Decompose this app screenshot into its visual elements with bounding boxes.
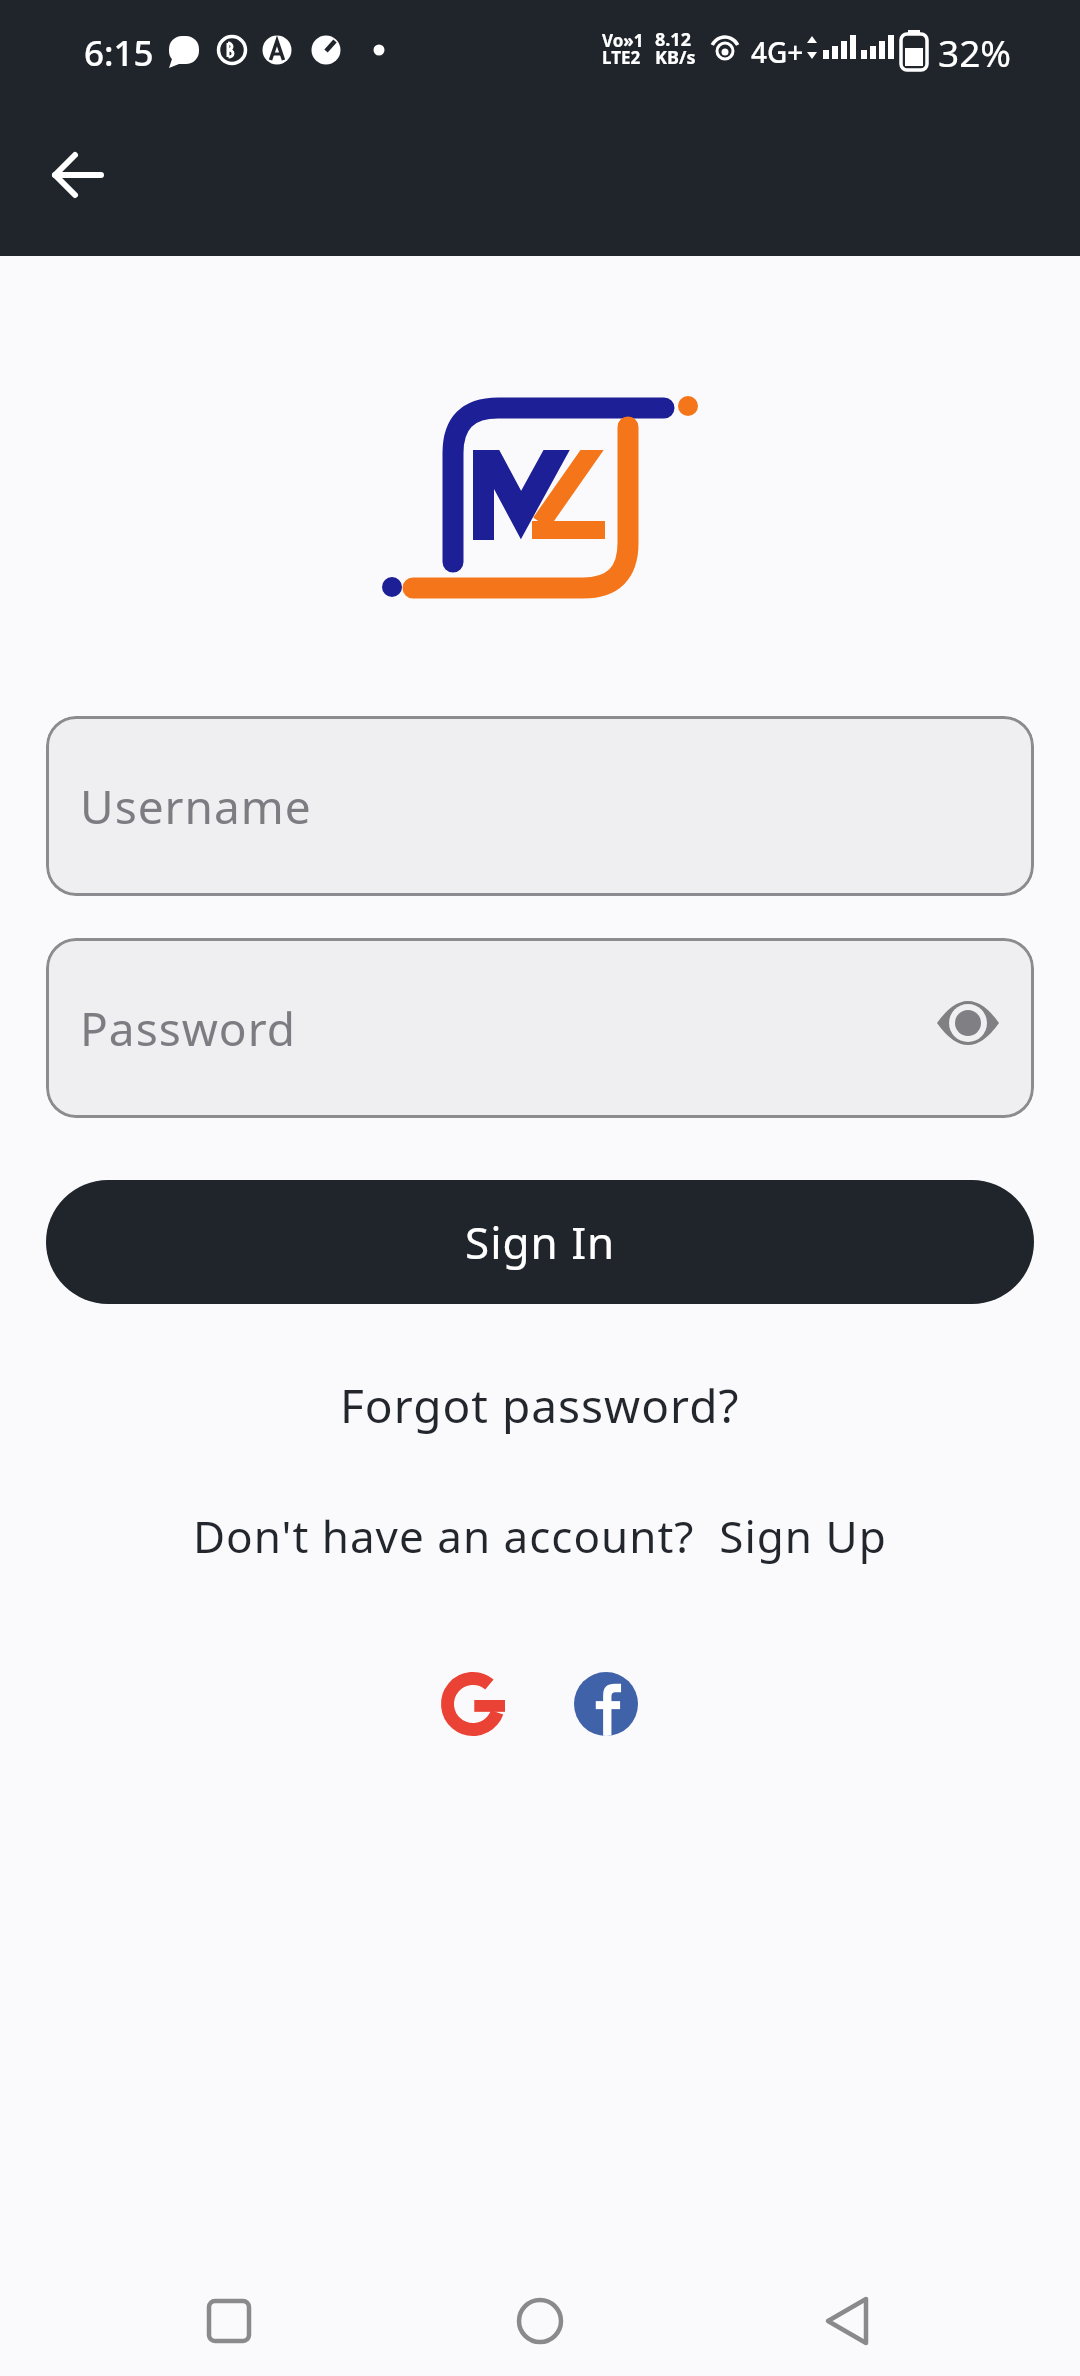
- button[interactable]: [40, 140, 116, 210]
- button[interactable]: Sign In: [46, 1180, 1034, 1304]
- staticText: Username: [80, 775, 312, 838]
- staticText: 8.12 KB/s: [655, 27, 696, 69]
- button[interactable]: Don't have an account? Sign Up: [193, 1506, 887, 1566]
- staticText: Don't have an account? Sign Up: [193, 1506, 887, 1566]
- staticText: Password: [80, 997, 297, 1060]
- button[interactable]: Forgot password?: [340, 1374, 740, 1437]
- staticText: Forgot password?: [340, 1374, 740, 1437]
- button[interactable]: Username: [46, 716, 1034, 896]
- staticText: 6:15: [84, 29, 154, 77]
- button[interactable]: [936, 1000, 1000, 1046]
- staticText: 4G+: [751, 33, 804, 71]
- button[interactable]: [441, 1672, 505, 1736]
- staticText: Vo»1 LTE2: [602, 29, 644, 69]
- staticText: 32%: [938, 27, 1012, 77]
- button[interactable]: Password: [46, 938, 1034, 1118]
- button[interactable]: [574, 1672, 638, 1736]
- staticText: Sign In: [465, 1212, 616, 1272]
